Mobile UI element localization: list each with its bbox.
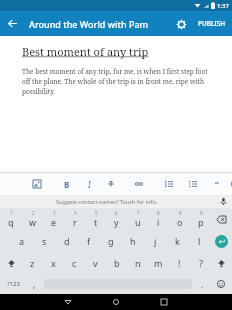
button[interactable]: Unordered list: [162, 177, 176, 191]
staticText: w: [29, 216, 37, 228]
button[interactable]: k: [166, 230, 188, 252]
button[interactable]: 5: [85, 208, 106, 230]
button[interactable]: m: [148, 252, 169, 274]
button[interactable]: ?: [190, 252, 211, 274]
button[interactable]: 0: [190, 208, 211, 230]
button[interactable]: 3: [43, 208, 64, 230]
button[interactable]: s: [33, 230, 56, 252]
staticText: 8: [157, 210, 160, 216]
staticText: g: [108, 235, 114, 247]
staticText: b: [114, 257, 120, 269]
button[interactable]: 9: [169, 208, 190, 230]
button[interactable]: I: [82, 177, 96, 191]
staticText: 7: [137, 210, 140, 216]
button[interactable]: Emoji: [210, 274, 232, 294]
button[interactable]: h: [122, 230, 144, 252]
staticText: v: [93, 257, 98, 269]
button[interactable]: g: [100, 230, 122, 252]
button[interactable]: Ordered list: [186, 177, 200, 191]
staticText: x: [51, 257, 56, 269]
staticText: f: [87, 235, 91, 247]
button[interactable]: Link: [132, 177, 146, 191]
button[interactable]: x: [43, 252, 64, 274]
button[interactable]: l: [188, 230, 210, 252]
staticText: PUBLISH: [198, 19, 226, 28]
button[interactable]: Shift: [211, 252, 232, 274]
staticText: h: [130, 235, 136, 247]
button[interactable]: d: [56, 230, 78, 252]
button[interactable]: 1: [0, 208, 22, 230]
staticText: 0: [200, 210, 203, 216]
staticText: B: [64, 179, 70, 190]
staticText: z: [30, 257, 35, 269]
staticText: 4: [74, 210, 77, 216]
button[interactable]: Recents: [149, 294, 179, 310]
button[interactable]: f: [78, 230, 100, 252]
button[interactable]: b: [106, 252, 127, 274]
button[interactable]: Back: [0, 11, 25, 36]
staticText: .: [201, 279, 204, 290]
button[interactable]: Enter: [210, 230, 232, 252]
button[interactable]: ?123: [0, 274, 26, 294]
button[interactable]: z: [22, 252, 43, 274]
button[interactable]: !: [169, 252, 190, 274]
button[interactable]: Shift: [0, 252, 22, 274]
staticText: The best moment of any trip, for me, is …: [22, 67, 210, 96]
button[interactable]: Insert image: [30, 177, 44, 191]
staticText: t: [94, 216, 98, 228]
staticText: 2: [32, 210, 35, 216]
staticText: n: [135, 257, 141, 269]
button[interactable]: Backspace: [211, 208, 232, 230]
staticText: q: [8, 216, 14, 228]
staticText: r: [73, 216, 77, 228]
staticText: 9: [179, 210, 182, 216]
button[interactable]: a: [10, 230, 33, 252]
button[interactable]: j: [144, 230, 166, 252]
button[interactable]: 4: [64, 208, 85, 230]
staticText: m: [154, 257, 163, 269]
button[interactable]: n: [127, 252, 148, 274]
staticText: a: [19, 235, 25, 247]
button[interactable]: Strikethrough: [104, 177, 118, 191]
button[interactable]: c: [64, 252, 85, 274]
staticText: ?: [199, 257, 203, 269]
staticText: k: [175, 235, 180, 247]
staticText: “: [215, 179, 219, 190]
staticText: d: [64, 235, 70, 247]
button[interactable]: v: [85, 252, 106, 274]
button[interactable]: Preview: [170, 13, 192, 35]
staticText: 3: [53, 210, 56, 216]
staticText: 5: [95, 210, 98, 216]
button[interactable]: Home: [101, 294, 131, 310]
button[interactable]: 6: [106, 208, 127, 230]
button[interactable]: 8: [148, 208, 169, 230]
staticText: Best moment of any trip: [22, 44, 149, 59]
staticText: o: [177, 216, 183, 228]
button[interactable]: Suggest contact names? Touch for info.: [0, 195, 214, 208]
staticText: c: [72, 257, 77, 269]
staticText: j: [154, 235, 157, 247]
staticText: e: [51, 216, 57, 228]
staticText: !: [178, 257, 181, 269]
staticText: 1: [10, 210, 13, 216]
staticText: ?123: [7, 280, 20, 288]
staticText: p: [198, 216, 204, 228]
staticText: Around the World with Pam: [29, 18, 149, 30]
staticText: y: [114, 216, 119, 228]
button[interactable]: Voice input: [214, 195, 232, 208]
staticText: I: [88, 179, 91, 190]
button[interactable]: PUBLISH: [192, 11, 232, 36]
button[interactable]: 2: [22, 208, 43, 230]
staticText: i: [157, 216, 160, 228]
button[interactable]: B: [60, 177, 74, 191]
button[interactable]: “: [210, 177, 224, 191]
button[interactable]: .: [194, 274, 210, 294]
staticText: 1:37: [217, 2, 229, 10]
button[interactable]: 7: [127, 208, 148, 230]
button[interactable]: Back: [53, 294, 83, 310]
staticText: 6: [115, 210, 118, 216]
button[interactable]: ,: [26, 274, 42, 294]
staticText: Suggest contact names? Touch for info.: [56, 198, 158, 205]
staticText: l: [198, 235, 201, 247]
